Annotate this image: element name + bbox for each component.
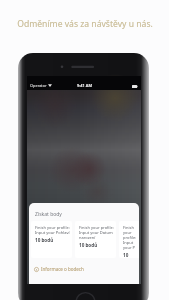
staticText: Finish your profile: Input your Datum na… (79, 225, 114, 240)
staticText: 10 bodů (123, 252, 139, 258)
staticText: 10 bodů (35, 237, 54, 243)
button[interactable]: Finish your profile: Input your P (119, 221, 139, 258)
staticText: Finish your profile: Input your Pohlaví (35, 225, 70, 235)
staticText: Finish your profile: Input your P (123, 225, 139, 250)
button[interactable]: Finish your profile: Input your Pohlaví (31, 221, 72, 258)
staticText: 9:41 AM (77, 83, 92, 88)
staticText: 10 bodů (79, 242, 98, 248)
staticText: Odměníme vás za návštěvy u nás. (17, 18, 153, 30)
button[interactable]: Finish your profile: Input your Datum na… (75, 221, 116, 258)
staticText: Informace o bodech (41, 266, 84, 272)
staticText: Operator (30, 83, 47, 88)
button[interactable]: Informace o bodech (34, 266, 84, 272)
staticText: Získat body (35, 211, 62, 218)
